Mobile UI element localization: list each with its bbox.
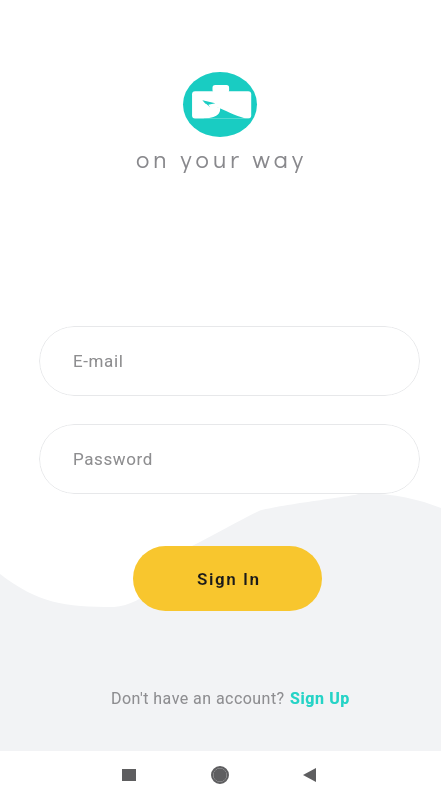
button[interactable]: Sign Up (290, 689, 350, 708)
staticText: Don't have an account? (111, 689, 290, 708)
staticText: Sign In (197, 569, 261, 589)
button[interactable]: Home (210, 766, 230, 784)
button[interactable]: Back (303, 768, 316, 782)
staticText: E-mail (73, 351, 124, 371)
button[interactable]: E-mail (39, 326, 420, 396)
button[interactable]: Sign In (133, 546, 322, 611)
button[interactable]: Password (39, 424, 420, 494)
staticText: Password (73, 449, 153, 469)
staticText: Sign Up (290, 689, 350, 708)
staticText: on your way (136, 142, 307, 175)
